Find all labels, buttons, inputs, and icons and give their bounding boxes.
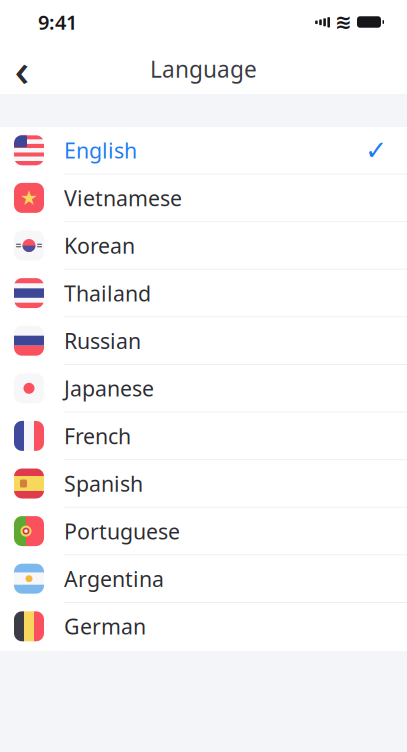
staticText: Korean	[64, 231, 135, 260]
staticText: Thailand	[64, 279, 151, 307]
button[interactable]: Thailand	[0, 270, 407, 317]
button[interactable]: Argentina	[0, 555, 407, 603]
staticText: ✓	[365, 135, 387, 165]
staticText: ≋	[335, 11, 352, 33]
staticText: Japanese	[64, 374, 154, 402]
staticText: Russian	[64, 326, 141, 355]
button[interactable]: German	[0, 603, 407, 651]
button[interactable]: ★	[0, 175, 407, 222]
button[interactable]: French	[0, 413, 407, 460]
staticText: German	[64, 612, 146, 640]
staticText: ‹	[14, 39, 29, 99]
staticText: Argentina	[64, 564, 164, 593]
staticText: Spanish	[64, 469, 143, 498]
button[interactable]: Spanish	[0, 460, 407, 508]
staticText: Language	[150, 54, 257, 84]
button[interactable]: Korean	[0, 222, 407, 270]
button[interactable]: Russian	[0, 317, 407, 365]
staticText: French	[64, 422, 131, 450]
button[interactable]: Japanese	[0, 365, 407, 413]
staticText: 9:41	[38, 9, 77, 35]
staticText: Vietnamese	[64, 184, 182, 212]
button[interactable]: Portuguese	[0, 508, 407, 555]
staticText: English	[64, 136, 137, 164]
button[interactable]: English	[0, 127, 407, 175]
button[interactable]: Back	[0, 47, 44, 91]
staticText: ★	[20, 187, 38, 209]
staticText: Portuguese	[64, 517, 180, 545]
